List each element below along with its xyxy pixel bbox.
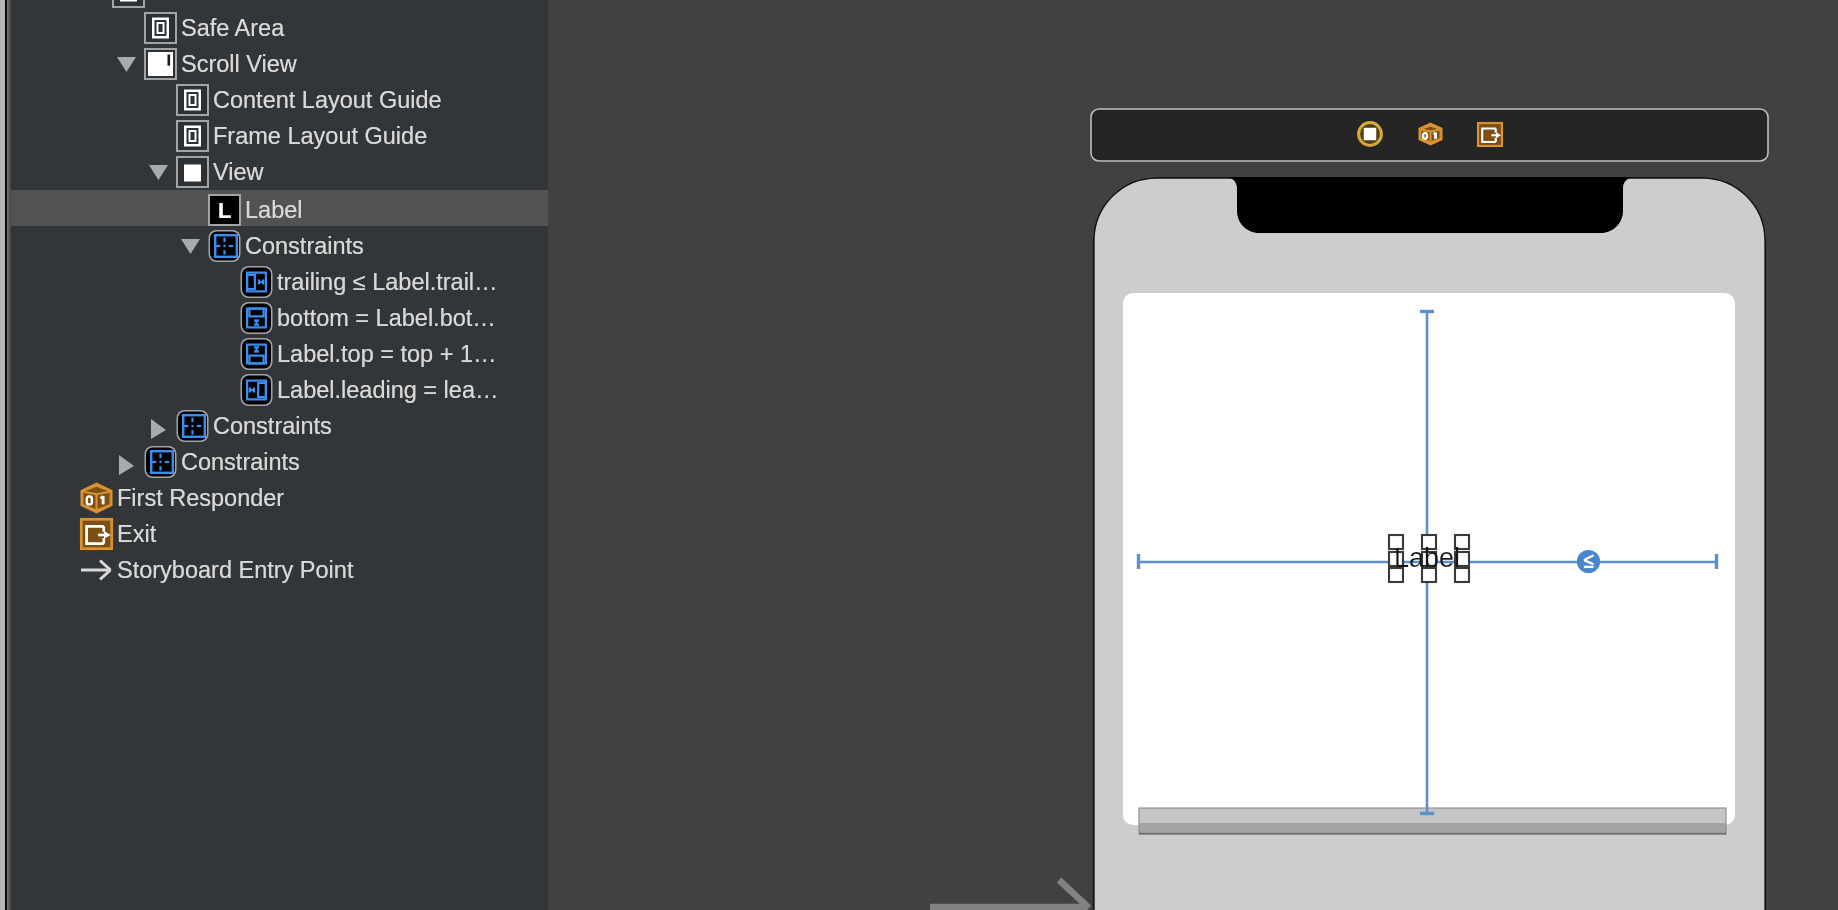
staticText: Frame Layout Guide xyxy=(213,123,428,149)
button[interactable]: Frame Layout Guide xyxy=(11,116,548,152)
staticText: Storyboard Entry Point xyxy=(117,557,354,583)
staticText: trailing ≤ Label.trail… xyxy=(277,269,498,295)
staticText: Content Layout Guide xyxy=(213,87,442,113)
staticText: Constraints xyxy=(181,449,300,475)
button[interactable]: Exit xyxy=(11,514,548,550)
staticText: Label xyxy=(1394,543,1461,573)
staticText: Safe Area xyxy=(181,15,285,41)
staticText: L xyxy=(218,198,232,223)
button[interactable]: View Controller xyxy=(1357,121,1383,147)
staticText: First Responder xyxy=(117,485,285,511)
button[interactable]: Label.leading = lea… xyxy=(11,370,548,406)
button[interactable]: Constraints xyxy=(11,442,548,478)
button[interactable]: Constraints xyxy=(11,226,548,262)
button[interactable]: First Responder xyxy=(11,478,548,514)
button[interactable]: Safe Area xyxy=(11,8,548,44)
staticText: Constraints xyxy=(213,413,332,439)
button[interactable]: Content Layout Guide xyxy=(11,80,548,116)
button[interactable]: L xyxy=(11,190,548,226)
staticText: Constraints xyxy=(245,233,364,259)
staticText: View xyxy=(213,159,264,185)
button[interactable]: Constraints xyxy=(11,406,548,442)
staticText: Exit xyxy=(117,521,157,547)
staticText: Label.top = top + 1… xyxy=(277,341,497,367)
staticText: bottom = Label.bot… xyxy=(277,305,496,331)
staticText: Label.leading = lea… xyxy=(277,377,499,403)
button[interactable]: trailing ≤ Label.trail… xyxy=(11,262,548,298)
button[interactable]: Exit xyxy=(1477,122,1503,147)
staticText: Scroll View xyxy=(181,51,297,77)
button[interactable]: View xyxy=(11,152,548,188)
button[interactable]: Scroll View xyxy=(11,44,548,80)
button[interactable]: Storyboard Entry Point xyxy=(11,550,548,586)
button[interactable]: bottom = Label.bot… xyxy=(11,298,548,334)
staticText: Label xyxy=(245,197,303,223)
button[interactable]: Label.top = top + 1… xyxy=(11,334,548,370)
button[interactable]: First Responder xyxy=(1418,122,1443,146)
